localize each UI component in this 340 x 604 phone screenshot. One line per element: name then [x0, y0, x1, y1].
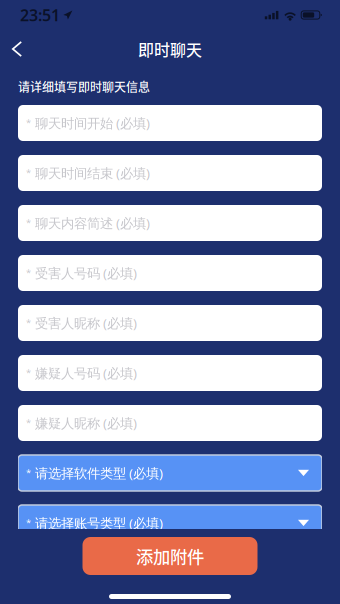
button[interactable]: * 请选择软件类型 (必填) [18, 455, 322, 491]
button[interactable]: * 嫌疑人昵称 (必填) [18, 405, 322, 441]
staticText: 23:51 [20, 4, 60, 26]
button[interactable]: * 嫌疑人号码 (必填) [18, 355, 322, 391]
staticText: 请详细填写即时聊天信息 [18, 78, 150, 95]
button[interactable]: 添加附件 [82, 537, 257, 575]
staticText: * 请选择软件类型 (必填) [26, 464, 163, 482]
button[interactable]: * 聊天时间结束 (必填) [18, 155, 322, 191]
staticText: * 聊天时间结束 (必填) [26, 164, 150, 182]
button[interactable]: * 请选择账号类型 (必填) [18, 505, 322, 541]
staticText: * 受害人昵称 (必填) [26, 314, 137, 332]
button[interactable]: * 受害人号码 (必填) [18, 255, 322, 291]
staticText: * 请选择账号类型 (必填) [26, 514, 163, 532]
staticText: 即时聊天 [138, 37, 202, 61]
button[interactable]: Back [0, 30, 34, 68]
staticText: * 聊天内容简述 (必填) [26, 214, 150, 232]
button[interactable]: * 受害人昵称 (必填) [18, 305, 322, 341]
staticText: * 嫌疑人昵称 (必填) [26, 414, 137, 432]
staticText: * 受害人号码 (必填) [26, 264, 137, 282]
button[interactable]: * 聊天内容简述 (必填) [18, 205, 322, 241]
staticText: * 嫌疑人号码 (必填) [26, 364, 137, 382]
staticText: * 聊天时间开始 (必填) [26, 114, 150, 132]
staticText: 添加附件 [136, 543, 204, 569]
button[interactable]: * 聊天时间开始 (必填) [18, 105, 322, 141]
